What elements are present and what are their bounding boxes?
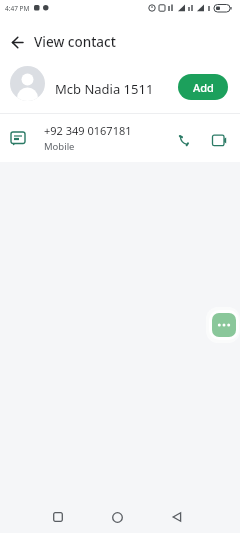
staticText: Add xyxy=(193,80,214,95)
staticText: 4:47 PM xyxy=(5,4,30,13)
button[interactable] xyxy=(0,25,34,59)
button[interactable] xyxy=(43,502,73,532)
staticText: Mobile xyxy=(44,140,75,153)
button[interactable] xyxy=(162,502,192,532)
staticText: View contact xyxy=(34,33,116,51)
button[interactable] xyxy=(102,502,132,532)
staticText: Mcb Nadia 1511 xyxy=(55,80,154,98)
button[interactable]: +92 349 0167181 xyxy=(0,114,240,162)
staticText: +92 349 0167181 xyxy=(44,123,132,138)
button[interactable] xyxy=(170,127,196,153)
button[interactable]: Add xyxy=(178,74,228,100)
button[interactable] xyxy=(206,307,240,341)
button[interactable] xyxy=(206,127,232,153)
